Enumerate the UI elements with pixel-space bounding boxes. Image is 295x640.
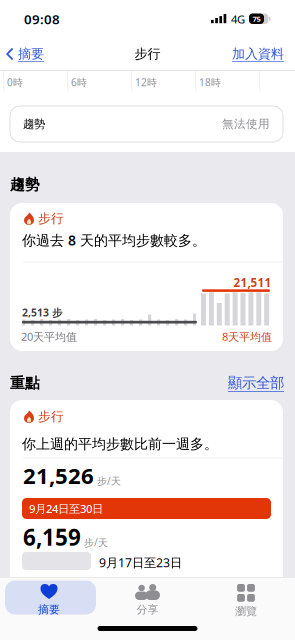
staticText: 2,513 步 (22, 305, 62, 320)
staticText: 75 (252, 13, 260, 24)
button[interactable]: 摘要 (0, 584, 98, 615)
button[interactable]: 步行 (10, 203, 283, 351)
button[interactable]: 瀏覽 (197, 584, 295, 617)
staticText: 你上週的平均步數比前一週多。 (22, 435, 218, 453)
staticText: 6,159 (23, 522, 81, 552)
staticText: 20天平均值 (21, 329, 77, 344)
staticText: 步行 (38, 210, 64, 226)
button[interactable]: 加入資料 (232, 40, 284, 68)
staticText: 4G (231, 11, 245, 27)
button[interactable]: 步行 (10, 400, 283, 600)
staticText: 09:08 (24, 10, 60, 28)
staticText: 21,526 (23, 460, 94, 490)
staticText: 趨勢 (23, 117, 45, 131)
staticText: 瀏覽 (235, 604, 257, 618)
staticText: 12時 (135, 75, 157, 89)
staticText: 無法使用 (222, 117, 270, 131)
button[interactable]: 趨勢 (10, 106, 283, 142)
staticText: 摘要 (18, 46, 44, 62)
staticText: 8天平均值 (222, 329, 272, 344)
button[interactable]: 摘要 (6, 40, 44, 68)
staticText: 重點 (10, 374, 40, 392)
staticText: 你過去 8 天的平均步數較多。 (22, 230, 206, 250)
staticText: 21,511 (233, 275, 271, 290)
staticText: 步/天 (97, 474, 121, 488)
staticText: 摘要 (38, 603, 60, 616)
staticText: 步行 (38, 408, 64, 424)
staticText: 加入資料 (232, 46, 284, 62)
staticText: 18時 (199, 75, 221, 89)
staticText: 0時 (7, 75, 23, 89)
staticText: 9月24日至30日 (29, 501, 103, 516)
staticText: 9月17日至23日 (99, 554, 182, 571)
button[interactable]: 分享 (98, 584, 196, 615)
staticText: 分享 (136, 603, 158, 616)
staticText: 步行 (134, 46, 160, 62)
staticText: 步/天 (84, 536, 108, 549)
staticText: 顯示全部 (228, 374, 284, 392)
staticText: 趨勢 (10, 175, 40, 194)
staticText: 6時 (71, 75, 87, 89)
button[interactable]: 顯示全部 (228, 374, 284, 391)
